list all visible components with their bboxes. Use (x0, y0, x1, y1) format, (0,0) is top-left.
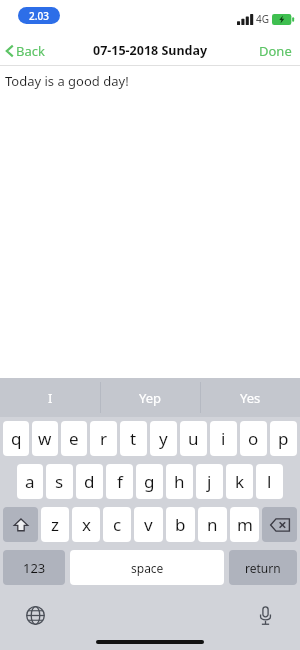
staticText: u (188, 427, 199, 450)
staticText: p (278, 427, 289, 450)
button[interactable]: l (256, 464, 283, 499)
staticText: space (131, 560, 164, 576)
staticText: n (207, 513, 218, 536)
button[interactable]: x (72, 507, 100, 542)
staticText: Yep (139, 389, 162, 407)
button[interactable]: h (166, 464, 193, 499)
staticText: t (130, 427, 137, 450)
button[interactable]: Dictate (252, 602, 278, 628)
button[interactable]: Back (0, 38, 53, 64)
button[interactable]: i (210, 421, 237, 456)
button[interactable]: u (180, 421, 207, 456)
button[interactable]: 2.03 (18, 7, 60, 24)
button[interactable]: z (41, 507, 69, 542)
button[interactable]: j (196, 464, 223, 499)
staticText: a (25, 470, 35, 493)
button[interactable]: Yes (201, 378, 300, 417)
button[interactable]: r (90, 421, 117, 456)
button[interactable]: v (134, 507, 163, 542)
button[interactable]: m (230, 507, 259, 542)
button[interactable]: f (106, 464, 133, 499)
staticText: 07-15-2018 Sunday (93, 42, 208, 59)
staticText: b (175, 513, 186, 536)
button[interactable]: e (61, 421, 87, 456)
staticText: y (159, 427, 168, 450)
staticText: Back (16, 42, 45, 60)
staticText: d (84, 470, 95, 493)
staticText: f (117, 470, 123, 493)
button[interactable]: s (46, 464, 73, 499)
button[interactable]: g (136, 464, 163, 499)
staticText: 4G (256, 12, 269, 26)
staticText: 123 (23, 559, 46, 577)
staticText: w (38, 427, 52, 450)
button[interactable]: Yep (101, 378, 200, 417)
staticText: o (248, 427, 259, 450)
button[interactable]: d (76, 464, 103, 499)
button[interactable]: n (198, 507, 227, 542)
button[interactable]: space (70, 550, 224, 585)
button[interactable]: 123 (3, 550, 65, 585)
staticText: m (237, 513, 253, 536)
button[interactable]: p (270, 421, 297, 456)
staticText: Done (259, 42, 292, 60)
button[interactable]: Change keyboard language (22, 602, 48, 628)
staticText: q (11, 427, 22, 450)
button[interactable]: Shift (3, 507, 38, 542)
button[interactable]: a (17, 464, 43, 499)
button[interactable]: b (166, 507, 195, 542)
button[interactable]: Backspace (262, 507, 297, 542)
button[interactable]: k (226, 464, 253, 499)
button[interactable]: t (120, 421, 147, 456)
staticText: r (100, 427, 108, 450)
staticText: v (144, 513, 153, 536)
button[interactable]: y (150, 421, 177, 456)
staticText: Yes (240, 389, 261, 407)
staticText: s (55, 470, 64, 493)
staticText: z (51, 513, 59, 536)
staticText: i (221, 427, 226, 450)
button[interactable]: q (3, 421, 29, 456)
button[interactable]: o (240, 421, 267, 456)
staticText: l (267, 470, 272, 493)
button[interactable]: Done (249, 38, 300, 64)
button[interactable]: c (103, 507, 131, 542)
staticText: e (69, 427, 79, 450)
staticText: j (207, 470, 212, 493)
button[interactable]: I (0, 378, 100, 417)
staticText: return (245, 560, 281, 576)
staticText: I (48, 389, 53, 407)
staticText: x (82, 513, 91, 536)
staticText: h (174, 470, 185, 493)
staticText: c (113, 513, 122, 536)
button[interactable]: w (32, 421, 58, 456)
staticText: Today is a good day! (5, 72, 129, 90)
staticText: k (235, 470, 245, 493)
button[interactable]: return (229, 550, 297, 585)
staticText: g (144, 470, 155, 493)
staticText: 2.03 (29, 9, 49, 23)
